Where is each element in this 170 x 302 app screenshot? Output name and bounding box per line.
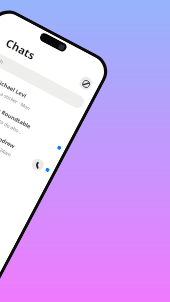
button[interactable]: Design Roundtable bbox=[0, 82, 70, 161]
staticText: Chats bbox=[3, 35, 39, 63]
staticText: sent a photo · 8:24am bbox=[0, 130, 13, 159]
button[interactable]: Call bbox=[30, 157, 46, 173]
button[interactable]: Sasha Lee bbox=[0, 126, 47, 205]
button[interactable]: Ana Ruiz bbox=[0, 148, 35, 227]
staticText: Matthew Andrew bbox=[0, 121, 17, 151]
staticText: sent a sticker · Mon bbox=[0, 85, 32, 112]
button[interactable]: New message bbox=[77, 74, 95, 92]
button[interactable]: Michael Levi bbox=[0, 60, 82, 139]
button[interactable]: Matthew Andrew bbox=[0, 104, 59, 183]
staticText: I'm going to do abo… bbox=[0, 108, 23, 136]
staticText: Design Roundtable bbox=[0, 99, 32, 130]
staticText: Search bbox=[0, 51, 5, 66]
staticText: Michael Levi bbox=[0, 77, 28, 100]
button[interactable]: Search bbox=[0, 46, 86, 110]
